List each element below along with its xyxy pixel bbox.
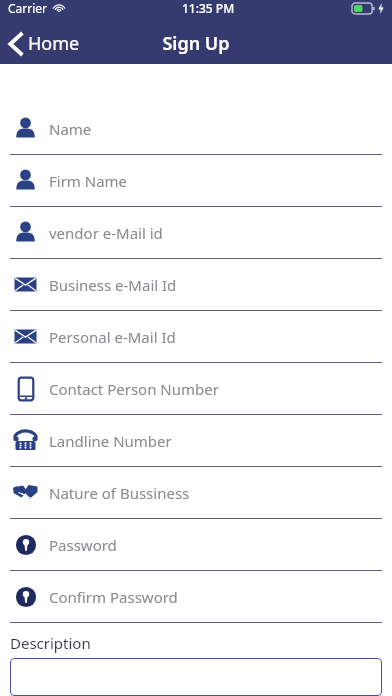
staticText: Confirm Password	[49, 587, 178, 607]
staticText: vendor e-Mail id	[49, 223, 163, 243]
staticText: Name	[49, 119, 92, 139]
staticText: Firm Name	[49, 171, 128, 191]
staticText: Business e-Mail Id	[49, 275, 177, 295]
other: Back	[9, 33, 22, 55]
button[interactable]: Contact Person Number	[0, 363, 392, 415]
staticText: 11:35 PM	[182, 0, 235, 16]
staticText: Password	[49, 535, 117, 555]
staticText: Sign Up	[162, 31, 230, 56]
button[interactable]: Firm Name	[0, 155, 392, 207]
button[interactable]	[10, 658, 382, 696]
staticText: Landline Number	[49, 431, 172, 451]
button[interactable]: Personal e-Mail Id	[0, 311, 392, 363]
button[interactable]: Landline Number	[0, 415, 392, 467]
staticText: Home	[28, 31, 80, 56]
button[interactable]: Confirm Password	[0, 571, 392, 623]
button[interactable]: Back	[0, 27, 90, 60]
staticText: Personal e-Mail Id	[49, 327, 176, 347]
staticText: Contact Person Number	[49, 379, 219, 399]
button[interactable]: Password	[0, 519, 392, 571]
staticText: Nature of Bussiness	[49, 483, 190, 503]
button[interactable]: Business e-Mail Id	[0, 259, 392, 311]
button[interactable]: Nature of Bussiness	[0, 467, 392, 519]
staticText: Carrier	[8, 0, 48, 16]
button[interactable]: vendor e-Mail id	[0, 207, 392, 259]
button[interactable]: Name	[0, 103, 392, 155]
staticText: Description	[10, 633, 91, 653]
